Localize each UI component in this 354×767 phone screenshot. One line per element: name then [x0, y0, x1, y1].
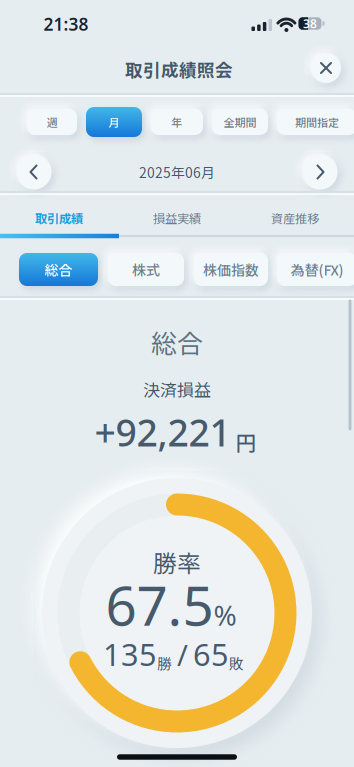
staticText: 21:38	[43, 12, 88, 35]
staticText: 週	[46, 114, 57, 130]
button[interactable]: 年	[151, 109, 203, 135]
button[interactable]: 資産推移	[236, 200, 354, 236]
button[interactable]: 株価指数	[194, 253, 268, 286]
button[interactable]: 期間指定	[277, 109, 354, 135]
staticText: 為替(FX)	[290, 259, 343, 280]
button[interactable]: 損益実績	[118, 200, 236, 236]
button[interactable]: 週	[27, 109, 77, 135]
button[interactable]: 株式	[108, 253, 184, 286]
staticText: 135勝 / 65敗	[103, 634, 244, 674]
staticText: 決済損益	[143, 377, 211, 401]
button[interactable]: Next month	[302, 154, 337, 189]
button[interactable]: 取引成績	[0, 200, 118, 236]
staticText: 期間指定	[295, 114, 339, 130]
staticText: 67.5%	[105, 568, 236, 641]
button[interactable]: Previous month	[16, 154, 51, 189]
staticText: 年	[171, 114, 182, 130]
staticText: 全期間	[223, 114, 256, 130]
staticText: 2025年06月	[139, 162, 215, 182]
staticText: 取引成績照会	[125, 56, 233, 82]
staticText: 損益実績	[153, 209, 201, 227]
staticText: 株価指数	[203, 259, 259, 280]
staticText: 株式	[132, 259, 160, 280]
staticText: 月	[108, 114, 119, 130]
staticText: +92,221 円	[94, 407, 256, 457]
button[interactable]: 総合	[19, 253, 98, 286]
staticText: 38	[303, 15, 317, 31]
staticText: 勝率	[153, 545, 201, 579]
staticText: 総合	[151, 323, 203, 361]
staticText: 総合	[44, 259, 72, 280]
button[interactable]: Close	[311, 53, 341, 83]
staticText: 資産推移	[271, 209, 319, 227]
button[interactable]: 月	[86, 107, 142, 137]
staticText: 取引成績	[35, 209, 83, 227]
button[interactable]: 為替(FX)	[277, 253, 354, 286]
button[interactable]: 全期間	[212, 109, 268, 135]
